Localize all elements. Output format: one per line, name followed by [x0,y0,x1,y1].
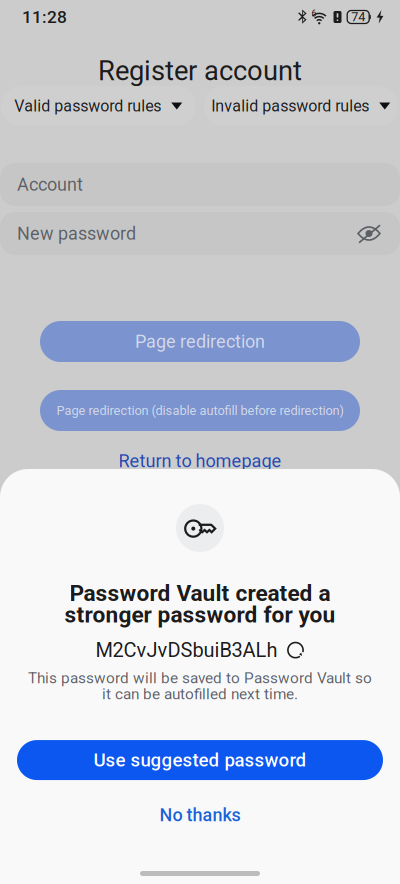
button[interactable]: Use suggested password [17,740,383,780]
button[interactable]: No thanks [0,802,400,828]
staticText: 6 [311,8,316,19]
staticText: Valid password rules [14,97,161,115]
staticText: Register account [98,55,302,87]
staticText: 74 [351,10,365,24]
staticText: This password will be saved to Password … [28,669,372,687]
button[interactable]: Valid password rules [1,86,195,126]
staticText: M2CvJvDSbuiB3ALh [95,638,277,662]
staticText: Page redirection [135,331,265,352]
staticText: New password [17,223,136,244]
staticText: No thanks [159,804,240,826]
button[interactable]: Show password [356,221,382,245]
button[interactable]: Generate a new password [286,641,304,659]
staticText: Account [17,174,83,195]
button[interactable]: Page redirection (disable autofill befor… [40,390,360,431]
staticText: it can be autofilled next time. [102,685,298,703]
staticText: Page redirection (disable autofill befor… [56,403,343,418]
button[interactable]: Invalid password rules [203,86,398,126]
staticText: Password Vault created a [69,580,330,607]
button[interactable]: Return to homepage [0,448,400,474]
staticText: 11:28 [22,7,67,27]
staticText: stronger password for you [64,602,335,628]
staticText: Use suggested password [93,749,306,771]
staticText: Return to homepage [118,450,281,472]
button[interactable]: Page redirection [40,321,360,362]
staticText: Invalid password rules [211,97,369,115]
